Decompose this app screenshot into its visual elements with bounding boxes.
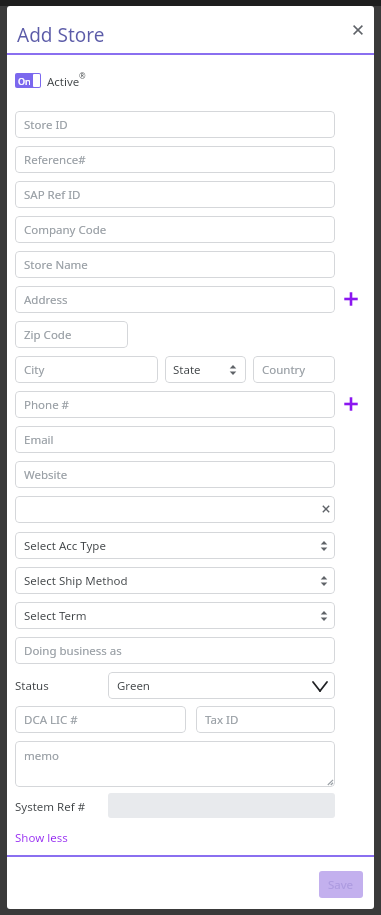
button[interactable]: Address bbox=[15, 286, 335, 313]
staticText: Store Name bbox=[24, 257, 88, 273]
button[interactable]: Phone # bbox=[15, 391, 335, 418]
button[interactable]: Store ID bbox=[15, 111, 335, 138]
staticText: Tax ID bbox=[205, 712, 239, 728]
button[interactable]: Company Code bbox=[15, 216, 335, 243]
staticText: Status bbox=[15, 678, 49, 694]
button[interactable]: Website bbox=[15, 461, 335, 488]
button[interactable]: City bbox=[15, 356, 158, 383]
staticText: Country bbox=[262, 362, 306, 378]
button[interactable] bbox=[15, 496, 335, 523]
staticText: Save bbox=[328, 877, 354, 893]
button[interactable]: Select Ship Method bbox=[15, 567, 335, 594]
staticText: DCA LIC # bbox=[24, 712, 78, 728]
button[interactable]: State bbox=[165, 356, 246, 383]
staticText: Select Acc Type bbox=[24, 538, 106, 554]
staticText: On bbox=[18, 75, 31, 87]
button[interactable]: On bbox=[15, 73, 41, 88]
staticText: Phone # bbox=[24, 397, 70, 413]
staticText: Show less bbox=[15, 830, 68, 846]
staticText: Store ID bbox=[24, 117, 68, 133]
button[interactable]: SAP Ref ID bbox=[15, 181, 335, 208]
staticText: Address bbox=[24, 292, 68, 308]
button[interactable]: Add another bbox=[343, 396, 359, 412]
button[interactable]: Show less bbox=[15, 830, 68, 846]
staticText: Reference# bbox=[24, 152, 86, 168]
staticText: Add Store bbox=[17, 22, 105, 48]
staticText: memo bbox=[24, 748, 59, 764]
button[interactable]: Green bbox=[108, 672, 335, 699]
button[interactable]: Select Term bbox=[15, 602, 335, 629]
button[interactable]: Store Name bbox=[15, 251, 335, 278]
staticText: Select Term bbox=[24, 608, 87, 624]
staticText: Doing business as bbox=[24, 643, 122, 659]
button[interactable]: DCA LIC # bbox=[15, 706, 186, 733]
staticText: ® bbox=[79, 70, 86, 81]
button[interactable]: memo bbox=[15, 741, 335, 787]
button[interactable]: Clear bbox=[318, 501, 334, 517]
staticText: Email bbox=[24, 432, 54, 448]
button[interactable]: Tax ID bbox=[196, 706, 335, 733]
button[interactable]: Select Acc Type bbox=[15, 532, 335, 559]
button[interactable]: Reference# bbox=[15, 146, 335, 173]
staticText: System Ref # bbox=[15, 799, 86, 815]
staticText: Company Code bbox=[24, 222, 107, 238]
staticText: Select Ship Method bbox=[24, 573, 128, 589]
button[interactable]: Zip Code bbox=[15, 321, 128, 348]
staticText: Website bbox=[24, 467, 68, 483]
button[interactable]: Country bbox=[253, 356, 335, 383]
button[interactable]: Doing business as bbox=[15, 637, 335, 664]
staticText: State bbox=[173, 362, 201, 378]
staticText: Green bbox=[117, 678, 150, 694]
staticText: City bbox=[24, 362, 45, 378]
staticText: SAP Ref ID bbox=[24, 187, 81, 203]
button[interactable]: Add another bbox=[343, 291, 359, 307]
staticText: Active bbox=[47, 74, 80, 90]
button[interactable]: Close bbox=[348, 20, 368, 40]
staticText: Zip Code bbox=[24, 327, 72, 343]
button[interactable]: Email bbox=[15, 426, 335, 453]
button[interactable]: Save bbox=[319, 871, 363, 898]
